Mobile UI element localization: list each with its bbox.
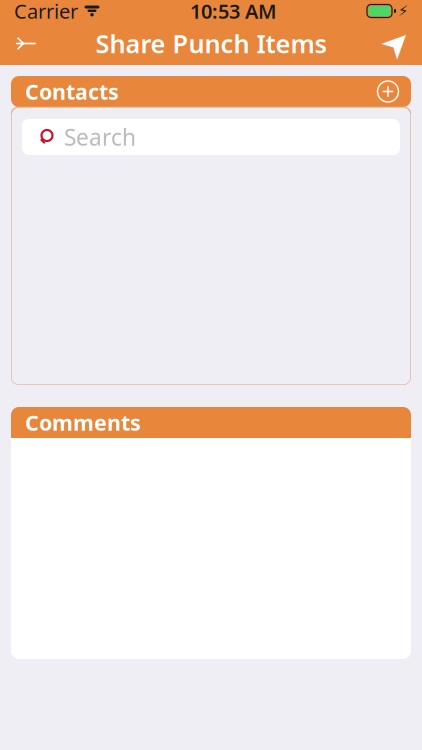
button[interactable]: Send [370, 22, 422, 65]
staticText: Comments [25, 408, 141, 437]
staticText: Share Punch Items [95, 27, 326, 60]
staticText: Search [64, 122, 136, 152]
button[interactable]: Search [22, 119, 400, 155]
button[interactable]: Back [0, 22, 52, 65]
staticText: 10:53 AM [190, 0, 277, 24]
button[interactable]: Add contact [371, 74, 405, 108]
staticText: Contacts [25, 77, 119, 106]
staticText: ➤ [381, 24, 410, 63]
staticText: Carrier [14, 0, 78, 24]
staticText: ⚡︎ [398, 3, 408, 19]
